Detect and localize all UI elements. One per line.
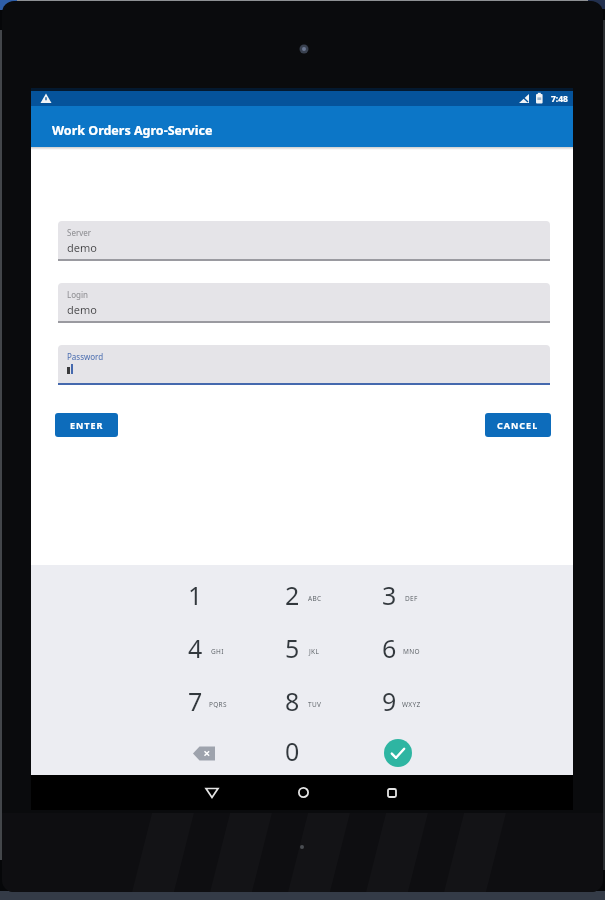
- button[interactable]: CANCEL: [485, 413, 551, 437]
- button[interactable]: [147, 674, 244, 727]
- staticText: DEF: [405, 594, 418, 603]
- staticText: MNO: [403, 647, 420, 656]
- staticText: JKL: [309, 647, 320, 656]
- button[interactable]: [341, 674, 438, 727]
- staticText: 0: [285, 734, 300, 768]
- staticText: CANCEL: [497, 419, 539, 431]
- button[interactable]: [244, 568, 341, 621]
- staticText: 2: [285, 578, 300, 612]
- button[interactable]: ENTER: [55, 413, 118, 437]
- button[interactable]: [371, 775, 413, 810]
- button[interactable]: [244, 621, 341, 674]
- staticText: 9: [382, 684, 397, 718]
- staticText: demo: [67, 240, 97, 255]
- staticText: 5: [285, 631, 300, 665]
- staticText: demo: [67, 302, 97, 317]
- button[interactable]: [341, 621, 438, 674]
- staticText: ABC: [308, 594, 322, 603]
- staticText: PQRS: [209, 700, 227, 709]
- button[interactable]: [341, 568, 438, 621]
- button[interactable]: 0: [244, 727, 341, 775]
- staticText: ENTER: [70, 419, 104, 431]
- button[interactable]: [147, 568, 244, 621]
- staticText: WXYZ: [402, 700, 421, 709]
- staticText: 3: [382, 578, 397, 612]
- button[interactable]: [244, 674, 341, 727]
- button[interactable]: Password: [58, 345, 550, 385]
- staticText: 1: [188, 578, 203, 612]
- button[interactable]: Login: [58, 283, 550, 323]
- button[interactable]: [370, 735, 426, 771]
- button[interactable]: [282, 775, 324, 810]
- staticText: GHI: [211, 647, 224, 656]
- button[interactable]: [191, 775, 233, 810]
- staticText: 7: [188, 684, 203, 718]
- button[interactable]: [183, 733, 225, 773]
- staticText: 4: [188, 631, 203, 665]
- button[interactable]: [147, 621, 244, 674]
- staticText: Work Orders Agro-Service: [52, 122, 213, 139]
- staticText: 8: [285, 684, 300, 718]
- staticText: Server: [67, 227, 92, 238]
- staticText: Login: [67, 289, 88, 300]
- staticText: Password: [67, 351, 104, 362]
- staticText: 7:48: [551, 93, 568, 105]
- staticText: 6: [382, 631, 397, 665]
- staticText: TUV: [308, 700, 322, 709]
- button[interactable]: Server: [58, 221, 550, 261]
